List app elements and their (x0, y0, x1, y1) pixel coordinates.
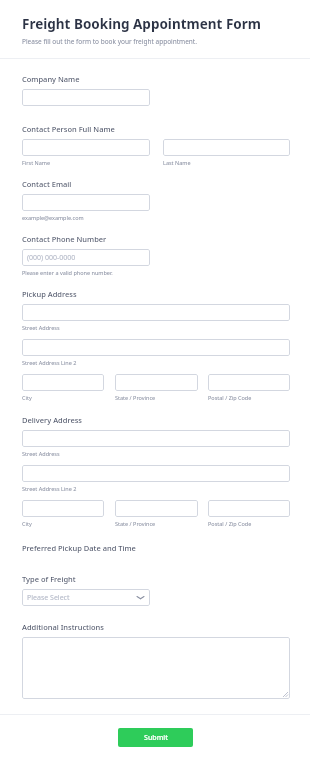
staticText: Please fill out the form to book your fr… (22, 37, 197, 46)
button[interactable]: Contact Phone Number (22, 249, 150, 266)
button[interactable]: Delivery Address city (22, 500, 104, 517)
button[interactable]: Company Name (22, 89, 150, 106)
button[interactable]: Contact Email (22, 194, 150, 211)
button[interactable]: Delivery Address street address (22, 430, 290, 447)
staticText: Last Name (163, 159, 191, 166)
staticText: Delivery Address (22, 415, 83, 425)
button[interactable]: First Name (22, 139, 150, 156)
button[interactable]: Pickup Address city (22, 374, 104, 391)
staticText: Street Address (22, 324, 60, 331)
staticText: Submit (144, 733, 168, 743)
button[interactable]: Delivery Address state or province (115, 500, 198, 517)
staticText: Street Address Line 2 (22, 359, 77, 366)
button[interactable]: Pickup Address street address line 2 (22, 339, 290, 356)
staticText: City (22, 394, 32, 401)
button[interactable]: Delivery Address postal code (208, 500, 290, 517)
staticText: Postal / Zip Code (208, 394, 252, 401)
button[interactable]: Last Name (163, 139, 290, 156)
staticText: Additional Instructions (22, 622, 104, 632)
button[interactable]: Delivery Address street address line 2 (22, 465, 290, 482)
staticText: State / Province (115, 520, 156, 527)
staticText: State / Province (115, 394, 156, 401)
staticText: Contact Person Full Name (22, 124, 115, 134)
staticText: First Name (22, 159, 51, 166)
staticText: Type of Freight (22, 574, 76, 584)
button[interactable]: Pickup Address street address (22, 304, 290, 321)
staticText: Preferred Pickup Date and Time (22, 543, 136, 553)
staticText: Contact Email (22, 179, 72, 189)
staticText: Company Name (22, 74, 80, 84)
staticText: Postal / Zip Code (208, 520, 252, 527)
staticText: example@example.com (22, 214, 84, 221)
button[interactable]: Submit (118, 728, 193, 747)
staticText: Please enter a valid phone number. (22, 269, 113, 276)
button[interactable]: Additional Instructions (22, 637, 290, 699)
staticText: Freight Booking Appointment Form (22, 15, 261, 33)
staticText: Please Select (27, 593, 70, 603)
button[interactable]: Pickup Address state or province (115, 374, 198, 391)
button[interactable]: Type of Freight dropdown (22, 589, 150, 606)
staticText: Contact Phone Number (22, 234, 107, 244)
staticText: Street Address (22, 450, 60, 457)
staticText: Street Address Line 2 (22, 485, 77, 492)
staticText: (000) 000-0000 (27, 253, 76, 263)
staticText: Pickup Address (22, 289, 77, 299)
button[interactable]: Pickup Address postal code (208, 374, 290, 391)
staticText: City (22, 520, 32, 527)
